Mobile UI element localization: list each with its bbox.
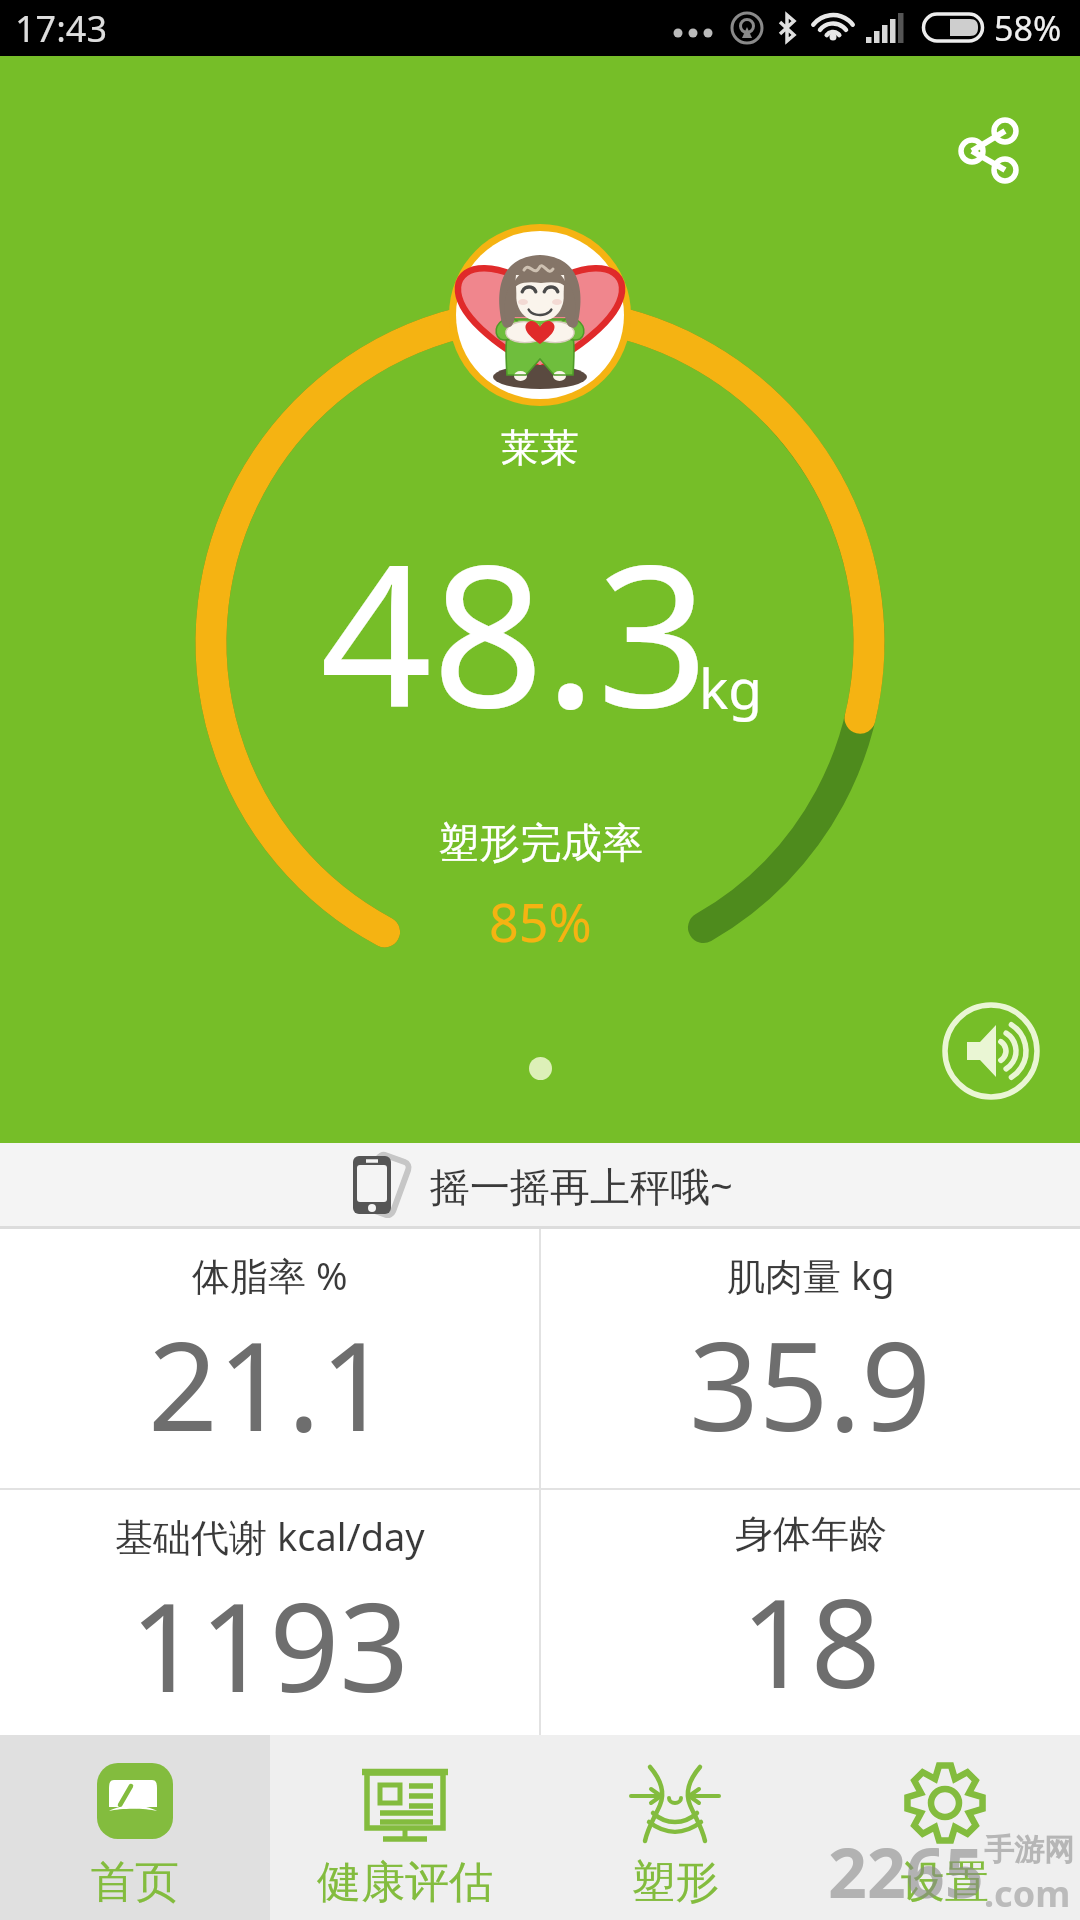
staticText: 手游网 [984, 1831, 1074, 1869]
button[interactable]: Profile [449, 224, 631, 406]
staticText: 35.9 [689, 1301, 932, 1467]
staticText: 基础代谢 kcal/day [115, 1510, 425, 1562]
button[interactable]: 摇一摇再上秤哦~ [0, 1143, 1080, 1226]
staticText: 1193 [130, 1562, 410, 1728]
staticText: 莱莱 [501, 423, 579, 472]
button[interactable]: 肌肉量 kg [541, 1229, 1080, 1488]
staticText: 85% [489, 886, 592, 957]
button[interactable]: 塑形 [540, 1735, 810, 1920]
button[interactable]: Share [940, 100, 1040, 200]
button[interactable]: 基础代谢 kcal/day [0, 1490, 539, 1735]
staticText: kg [699, 650, 763, 725]
staticText: 首页 [91, 1855, 179, 1910]
staticText: 18 [741, 1558, 881, 1724]
staticText: 2265 [828, 1825, 984, 1918]
button[interactable]: 健康评估 [270, 1735, 540, 1920]
button[interactable]: 首页 [0, 1735, 270, 1920]
staticText: 摇一摇再上秤哦~ [430, 1158, 733, 1213]
button[interactable]: 体脂率 % [0, 1229, 539, 1488]
button[interactable]: Sound [941, 1001, 1041, 1101]
staticText: 健康评估 [317, 1855, 493, 1910]
button[interactable]: 身体年龄 [541, 1490, 1080, 1735]
staticText: 设置 [901, 1855, 989, 1910]
staticText: 58% [994, 5, 1062, 51]
staticText: 17:43 [15, 4, 108, 53]
staticText: .com [984, 1869, 1071, 1918]
staticText: 体脂率 % [192, 1249, 348, 1301]
staticText: 塑形完成率 [438, 818, 643, 870]
staticText: 塑形 [631, 1855, 719, 1910]
staticText: 48.3 [320, 497, 709, 764]
button[interactable]: 设置 [810, 1735, 1080, 1920]
staticText: 肌肉量 kg [727, 1249, 895, 1301]
staticText: 21.1 [148, 1301, 391, 1467]
staticText: 身体年龄 [735, 1510, 887, 1558]
